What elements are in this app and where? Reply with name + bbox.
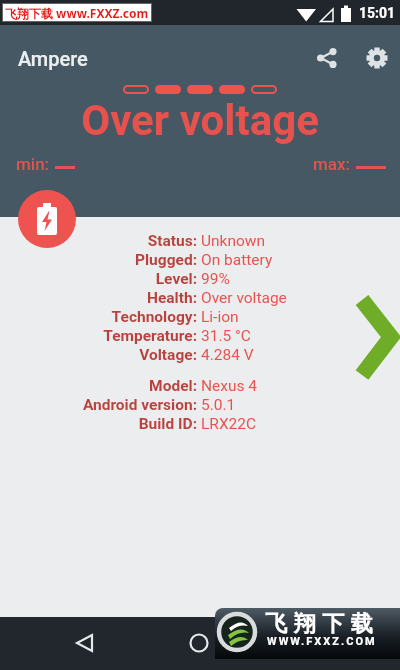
staticText: Unknown <box>201 232 266 250</box>
staticText: Level: <box>0 270 197 288</box>
staticText: max: <box>313 154 351 174</box>
staticText: LRX22C <box>201 415 257 433</box>
staticText: Health: <box>0 289 197 307</box>
staticText: 飞翔下载 <box>262 610 376 638</box>
staticText: min: <box>16 154 50 174</box>
staticText: Plugged: <box>0 251 197 269</box>
staticText: On battery <box>201 251 273 269</box>
staticText: 4.284 V <box>201 346 254 364</box>
button[interactable] <box>312 43 342 73</box>
staticText: Technology: <box>0 308 197 326</box>
staticText: Status: <box>0 232 197 250</box>
staticText: Voltage: <box>0 346 197 364</box>
button[interactable] <box>0 617 134 670</box>
button[interactable] <box>362 43 392 73</box>
staticText: Build ID: <box>0 415 197 433</box>
staticText: Li-ion <box>201 308 239 326</box>
staticText: Android version: <box>0 396 197 414</box>
button[interactable] <box>267 617 400 670</box>
staticText: Over voltage <box>201 289 287 307</box>
staticText: 31.5 °C <box>201 327 251 345</box>
staticText: Nexus 4 <box>201 377 258 395</box>
staticText: 5.0.1 <box>201 396 236 414</box>
staticText: Ampere <box>18 47 88 70</box>
button[interactable] <box>350 287 400 387</box>
staticText: 15:01 <box>359 5 396 21</box>
button[interactable] <box>134 617 267 670</box>
staticText: Model: <box>0 377 197 395</box>
staticText: 99% <box>201 270 230 288</box>
staticText: Over voltage <box>0 96 400 145</box>
staticText: Temperature: <box>0 327 197 345</box>
staticText: 飞翔下载 www.FXXZ.com <box>5 5 149 21</box>
staticText: WWW.FXXZ.COM <box>267 635 377 648</box>
button[interactable] <box>18 190 76 248</box>
